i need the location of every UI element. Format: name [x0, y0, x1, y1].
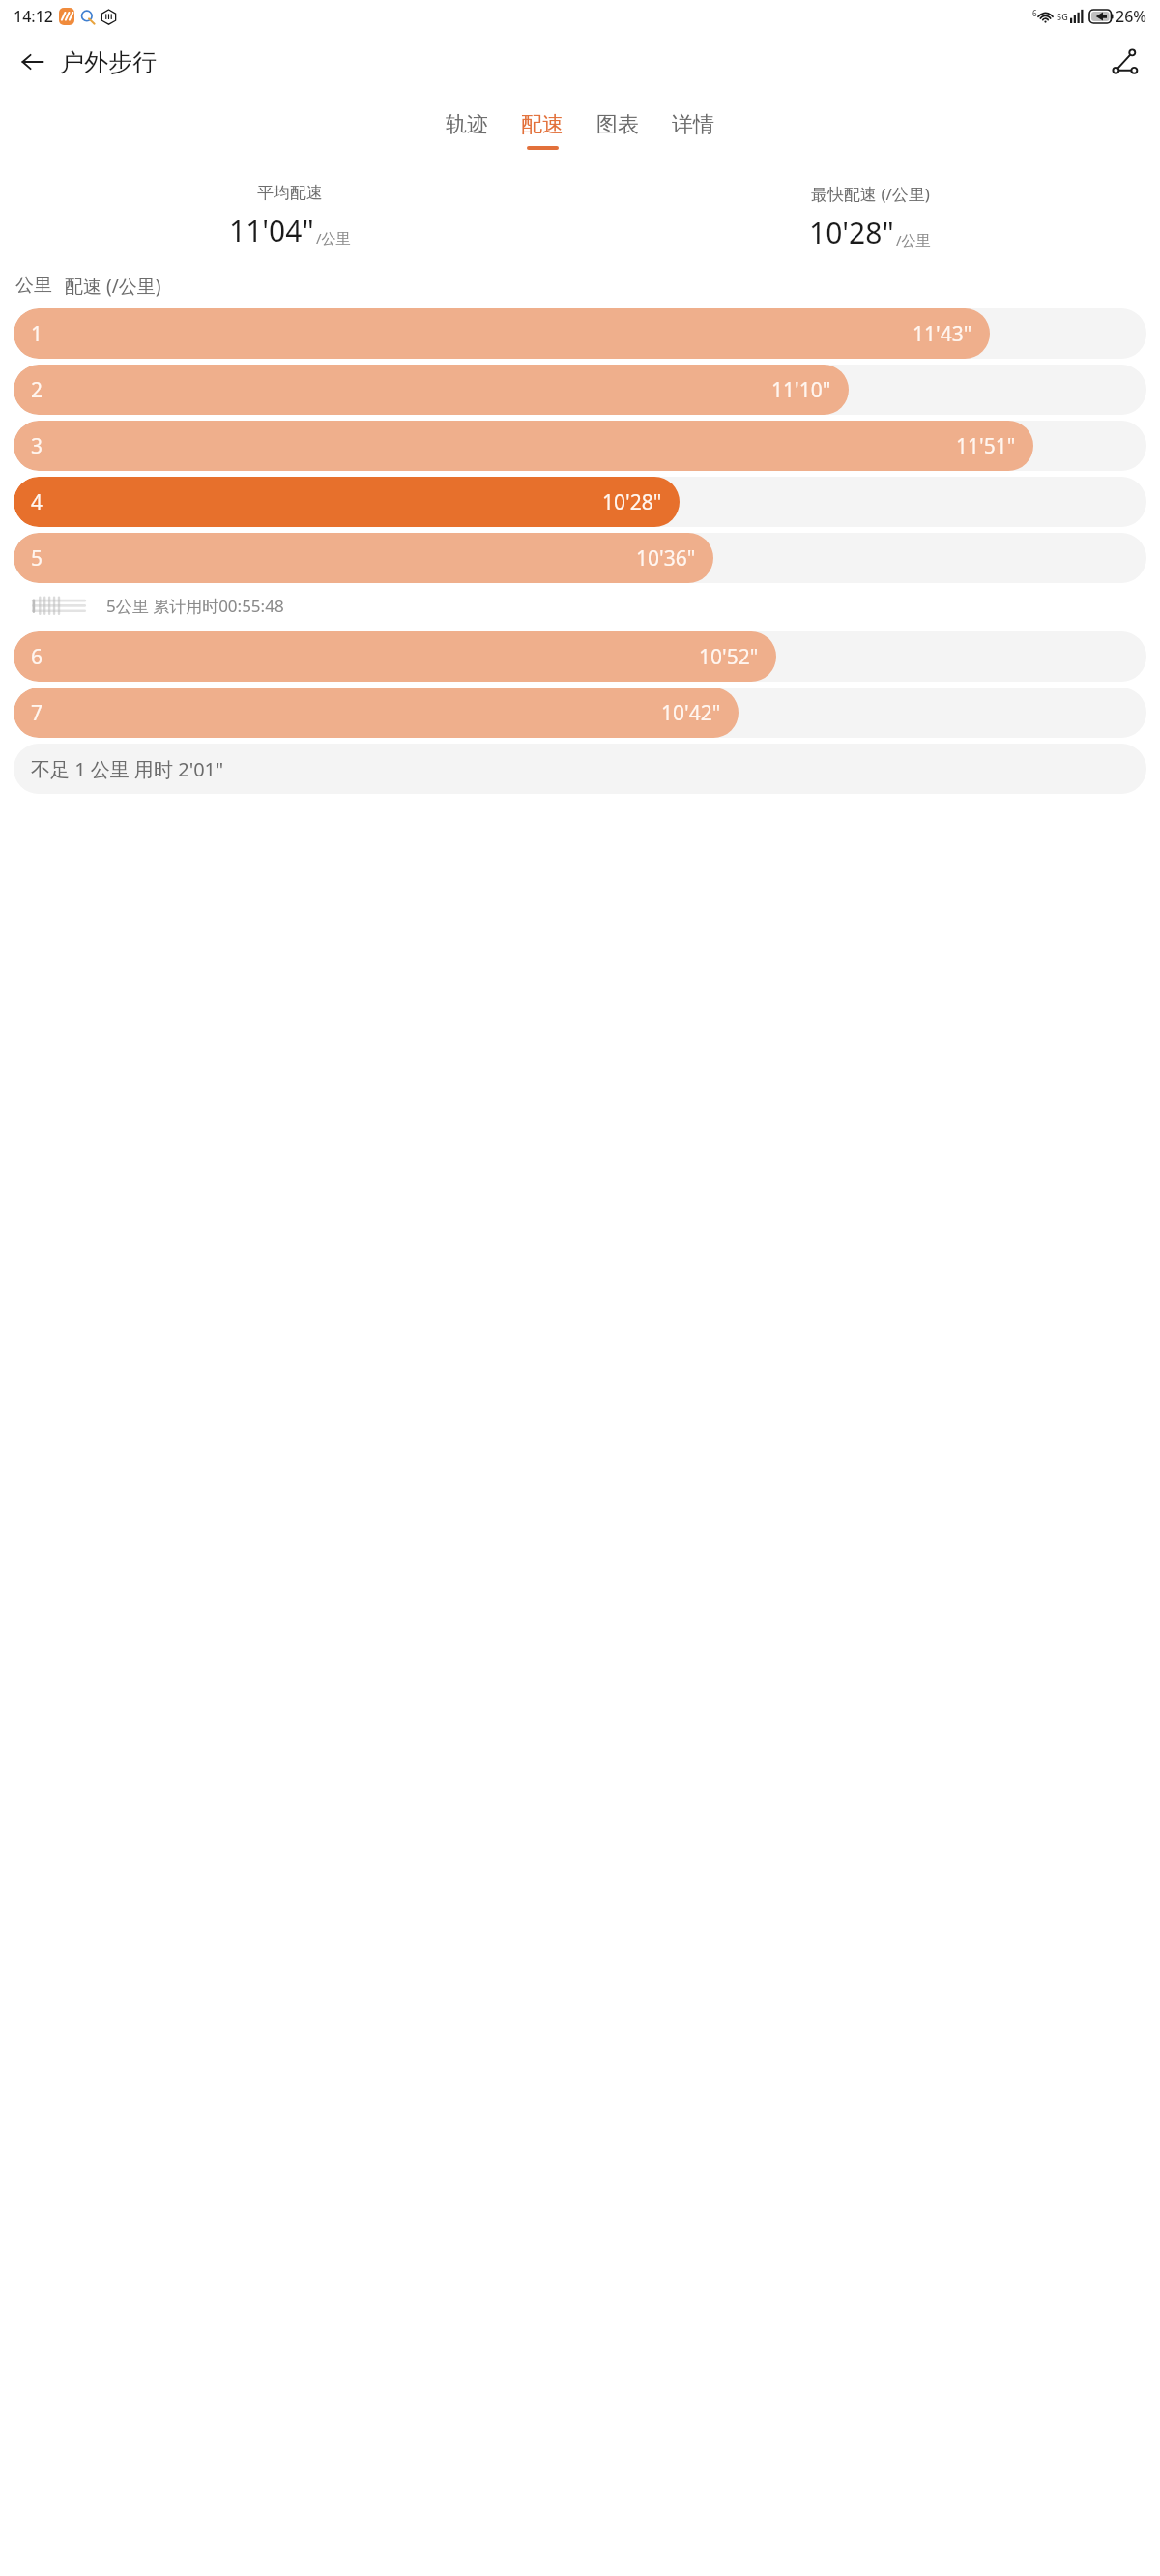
staticText: 6: [31, 643, 43, 671]
button[interactable]: 2: [14, 365, 1146, 415]
staticText: 11'43": [913, 320, 972, 348]
button[interactable]: 配速: [505, 107, 580, 154]
button[interactable]: 1: [14, 308, 1146, 359]
staticText: 26%: [1116, 6, 1146, 27]
staticText: 11'04": [229, 211, 314, 250]
staticText: 11'51": [956, 432, 1016, 460]
staticText: 10'42": [661, 699, 721, 727]
staticText: /公里: [896, 230, 931, 249]
staticText: 14:12: [14, 6, 53, 27]
button[interactable]: 7: [14, 688, 1146, 738]
button[interactable]: 详情: [655, 107, 731, 154]
staticText: 配速: [521, 111, 564, 138]
staticText: 配速 (/公里): [65, 274, 161, 299]
staticText: 户外步行: [60, 47, 157, 77]
staticText: 5公里 累计用时00:55:48: [106, 595, 284, 617]
staticText: 6: [1032, 8, 1037, 18]
staticText: 7: [31, 699, 43, 727]
staticText: 5G: [1057, 11, 1068, 22]
button[interactable]: 轨迹: [429, 107, 505, 154]
staticText: 3: [31, 432, 43, 460]
staticText: 1: [31, 320, 43, 348]
button[interactable]: 5: [14, 533, 1146, 583]
staticText: 不足 1 公里 用时 2'01": [31, 756, 224, 782]
staticText: 平均配速: [257, 183, 323, 203]
staticText: 2: [31, 376, 43, 404]
staticText: 4: [31, 488, 43, 516]
button[interactable]: 不足 1 公里 用时 2'01": [14, 744, 1146, 794]
button[interactable]: Back: [10, 39, 56, 85]
staticText: 10'36": [636, 544, 696, 572]
button[interactable]: 4: [14, 477, 1146, 527]
button[interactable]: 6: [14, 631, 1146, 682]
button[interactable]: 图表: [580, 107, 655, 154]
staticText: 10'52": [699, 643, 759, 671]
button[interactable]: Share: [1102, 39, 1148, 85]
staticText: 图表: [596, 111, 639, 138]
staticText: 公里: [15, 274, 52, 297]
staticText: 11'10": [771, 376, 831, 404]
staticText: 10'28": [809, 213, 894, 252]
button[interactable]: 3: [14, 421, 1146, 471]
staticText: 10'28": [602, 488, 662, 516]
staticText: 最快配速 (/公里): [811, 183, 930, 205]
staticText: 5: [31, 544, 43, 572]
staticText: /公里: [316, 228, 351, 248]
staticText: 详情: [672, 111, 714, 138]
staticText: 轨迹: [446, 111, 488, 138]
